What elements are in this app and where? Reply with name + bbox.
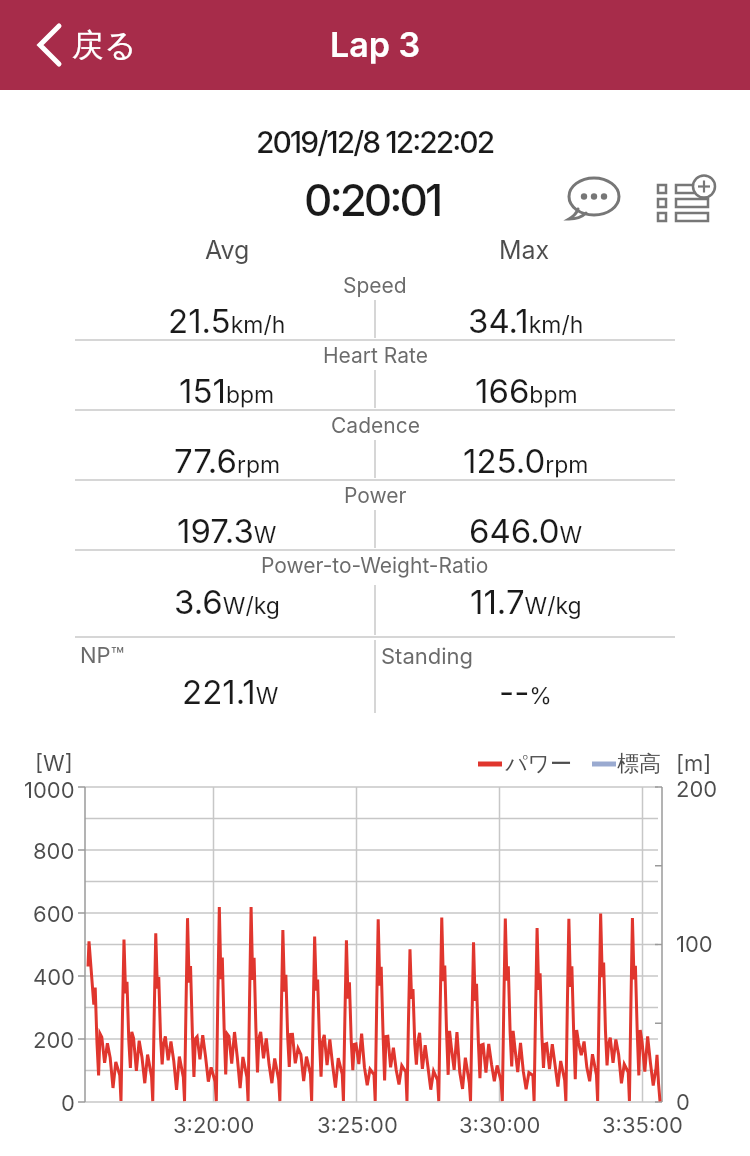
staticText: 2019/12/8 12:22:02 <box>256 124 494 160</box>
staticText: 166bpm <box>475 371 578 411</box>
staticText: 標高 <box>617 750 661 778</box>
staticText: 3.6W/kg <box>174 582 280 622</box>
staticText: Speed <box>343 273 407 298</box>
staticText: 3:20:00 <box>173 1112 255 1139</box>
staticText: 221.1W <box>182 672 279 712</box>
staticText: 0:20:01 <box>304 173 441 226</box>
staticText: 100 <box>676 931 713 958</box>
staticText: [W] <box>35 750 73 777</box>
staticText: 200 <box>33 1027 75 1054</box>
staticText: [m] <box>676 750 712 777</box>
staticText: 151bpm <box>179 371 275 411</box>
staticText: 34.1km/h <box>468 301 584 341</box>
staticText: Heart Rate <box>323 343 428 368</box>
staticText: 125.0rpm <box>463 441 589 481</box>
staticText: 21.5km/h <box>168 301 286 341</box>
staticText: Power <box>344 483 407 508</box>
staticText: --% <box>499 672 552 712</box>
staticText: 0 <box>61 1090 75 1117</box>
staticText: 400 <box>33 964 75 991</box>
staticText: パワー <box>505 750 573 778</box>
staticText: 3:35:00 <box>602 1112 683 1139</box>
staticText: 戻る <box>72 25 137 65</box>
staticText: 1000 <box>24 777 75 804</box>
staticText: 800 <box>33 838 75 865</box>
staticText: Max <box>499 235 550 265</box>
staticText: 77.6rpm <box>174 441 281 481</box>
staticText: 200 <box>676 776 718 803</box>
staticText: 600 <box>33 901 75 928</box>
staticText: Power-to-Weight-Ratio <box>261 553 489 578</box>
staticText: Avg <box>205 235 250 265</box>
staticText: 3:25:00 <box>317 1112 398 1139</box>
staticText: 646.0W <box>469 511 583 551</box>
staticText: 197.3W <box>177 511 277 551</box>
staticText: Cadence <box>331 413 420 438</box>
staticText: 3:30:00 <box>459 1112 541 1139</box>
staticText: Standing <box>381 643 474 670</box>
staticText: 11.7W/kg <box>470 582 582 622</box>
staticText: 0 <box>676 1089 690 1116</box>
staticText: Lap 3 <box>330 24 421 65</box>
staticText: NP™ <box>80 642 125 669</box>
